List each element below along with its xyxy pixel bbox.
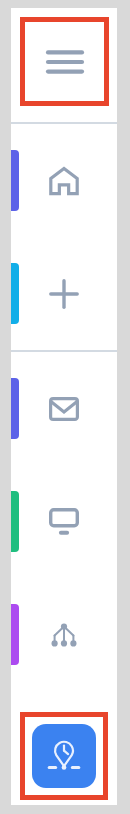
button[interactable]: Menu [25, 22, 104, 101]
button[interactable]: Location history [32, 724, 96, 788]
button[interactable]: Display [0, 465, 130, 578]
button[interactable]: Hierarchy [0, 578, 130, 691]
button[interactable]: Add [0, 237, 130, 350]
button[interactable]: Home [0, 124, 130, 237]
button[interactable]: Mail [0, 352, 130, 465]
